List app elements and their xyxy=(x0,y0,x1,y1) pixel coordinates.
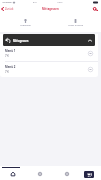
staticText: Zurück xyxy=(5,7,14,11)
button[interactable]: Menü 1 xyxy=(0,46,98,61)
staticText: Mittagessen xyxy=(42,7,59,11)
staticText: Allgemein xyxy=(20,24,31,27)
staticText: Mittagessen xyxy=(13,39,29,42)
staticText: 1 kb/s xyxy=(57,1,63,4)
staticText: Menü 2 xyxy=(5,65,16,69)
button[interactable]: Mittagessen xyxy=(3,34,95,46)
button[interactable]: Info xyxy=(87,50,94,57)
button[interactable]: Benachrichtigungen xyxy=(53,166,81,180)
button[interactable]: Ausw. & Texte xyxy=(50,13,101,32)
button[interactable]: Zurück xyxy=(0,5,17,13)
button[interactable]: Start xyxy=(0,166,26,180)
staticText: 9:41 xyxy=(33,1,37,4)
staticText: Ausw. & Texte xyxy=(68,24,83,27)
staticText: 7 € xyxy=(5,70,9,74)
staticText: Neudenker xyxy=(2,1,12,4)
button[interactable]: Info xyxy=(87,66,94,73)
button[interactable]: Entdecken xyxy=(26,166,53,180)
staticText: 7 € xyxy=(5,54,9,58)
button[interactable]: Allgemein xyxy=(0,13,50,32)
staticText: Menü 1 xyxy=(5,49,16,53)
button[interactable]: Suche xyxy=(90,5,101,13)
button[interactable]: Menü 2 xyxy=(0,62,98,77)
button[interactable]: Warenkorb xyxy=(81,166,101,180)
